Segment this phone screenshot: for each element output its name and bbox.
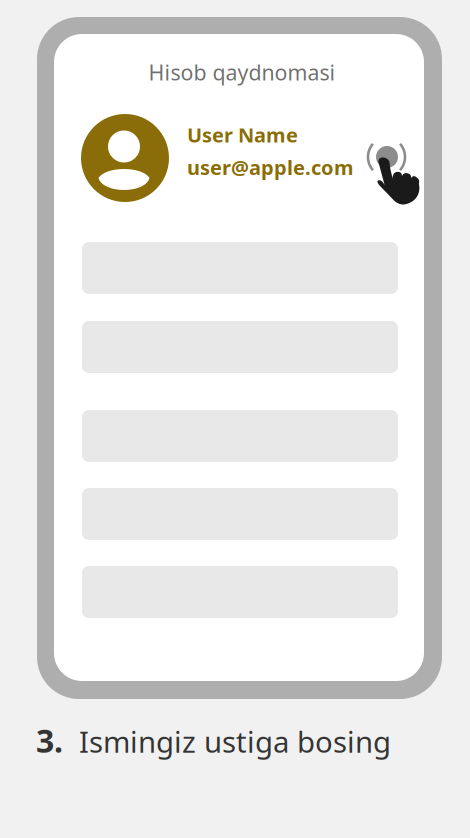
button[interactable]: User Name: [81, 114, 365, 206]
staticText: Ismingiz ustiga bosing: [79, 722, 391, 761]
staticText: user@apple.com: [187, 154, 354, 181]
staticText: 3.: [36, 719, 63, 761]
staticText: User Name: [187, 121, 298, 148]
staticText: Hisob qaydnomasi: [148, 58, 335, 86]
